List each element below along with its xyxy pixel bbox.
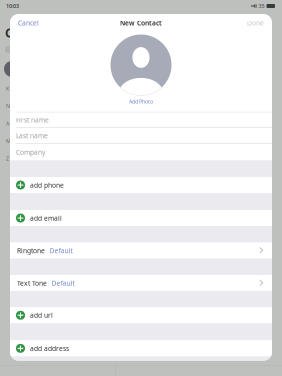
button[interactable]: Company [10,144,272,160]
staticText: N [6,102,10,109]
button[interactable]: add phone [10,177,272,193]
button[interactable]: Cancel [16,15,41,31]
staticText: 10:03 [6,2,19,10]
staticText: Ringtone [17,246,45,255]
staticText: Text Tone [17,279,47,287]
button[interactable]: add email [10,210,272,226]
staticText: C [5,25,13,41]
staticText: Company [16,148,45,157]
staticText: Default [49,246,72,255]
staticText: 35 [258,2,264,10]
button[interactable]: Text Tone [10,275,272,291]
staticText: Done [247,19,264,27]
staticText: Last name [16,131,48,140]
button[interactable]: Ringtone [10,243,272,258]
staticText: Cancel [18,19,39,27]
button[interactable]: Last name [10,128,272,143]
staticText: A [6,120,9,127]
staticText: Add Photo [129,98,153,105]
button[interactable]: First name [10,113,272,127]
staticText: Z [6,155,9,162]
button[interactable]: Done [245,15,266,31]
staticText: First name [16,115,49,124]
staticText: add url [30,311,53,320]
staticText: Default [51,279,74,287]
staticText: add address [30,344,69,353]
button[interactable]: add url [10,307,272,323]
button[interactable]: add address [10,340,272,356]
staticText: M [6,137,11,144]
staticText: K [6,85,9,92]
button[interactable]: Add Photo [110,34,171,105]
staticText: New Contact [120,19,162,27]
staticText: add phone [30,181,64,189]
staticText: add email [30,214,62,222]
